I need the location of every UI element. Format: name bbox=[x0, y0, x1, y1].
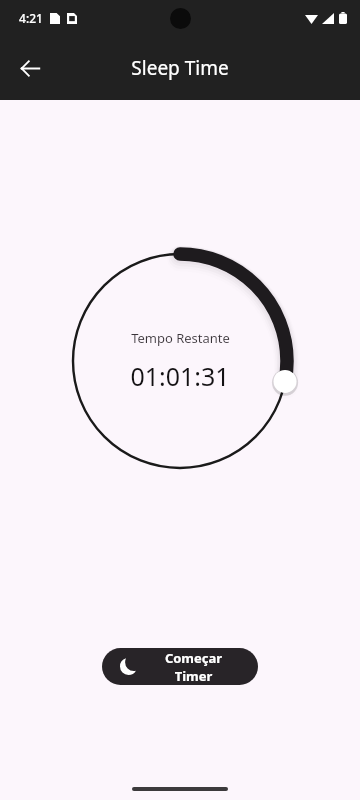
button[interactable]: Back bbox=[6, 44, 54, 92]
staticText: Tempo Restante bbox=[131, 329, 230, 347]
button[interactable]: Começar Timer bbox=[102, 648, 258, 685]
staticText: Começar Timer bbox=[147, 649, 240, 685]
staticText: 01:01:31 bbox=[130, 359, 230, 393]
staticText: Sleep Time bbox=[131, 55, 229, 81]
staticText: 4:21 bbox=[19, 10, 43, 26]
